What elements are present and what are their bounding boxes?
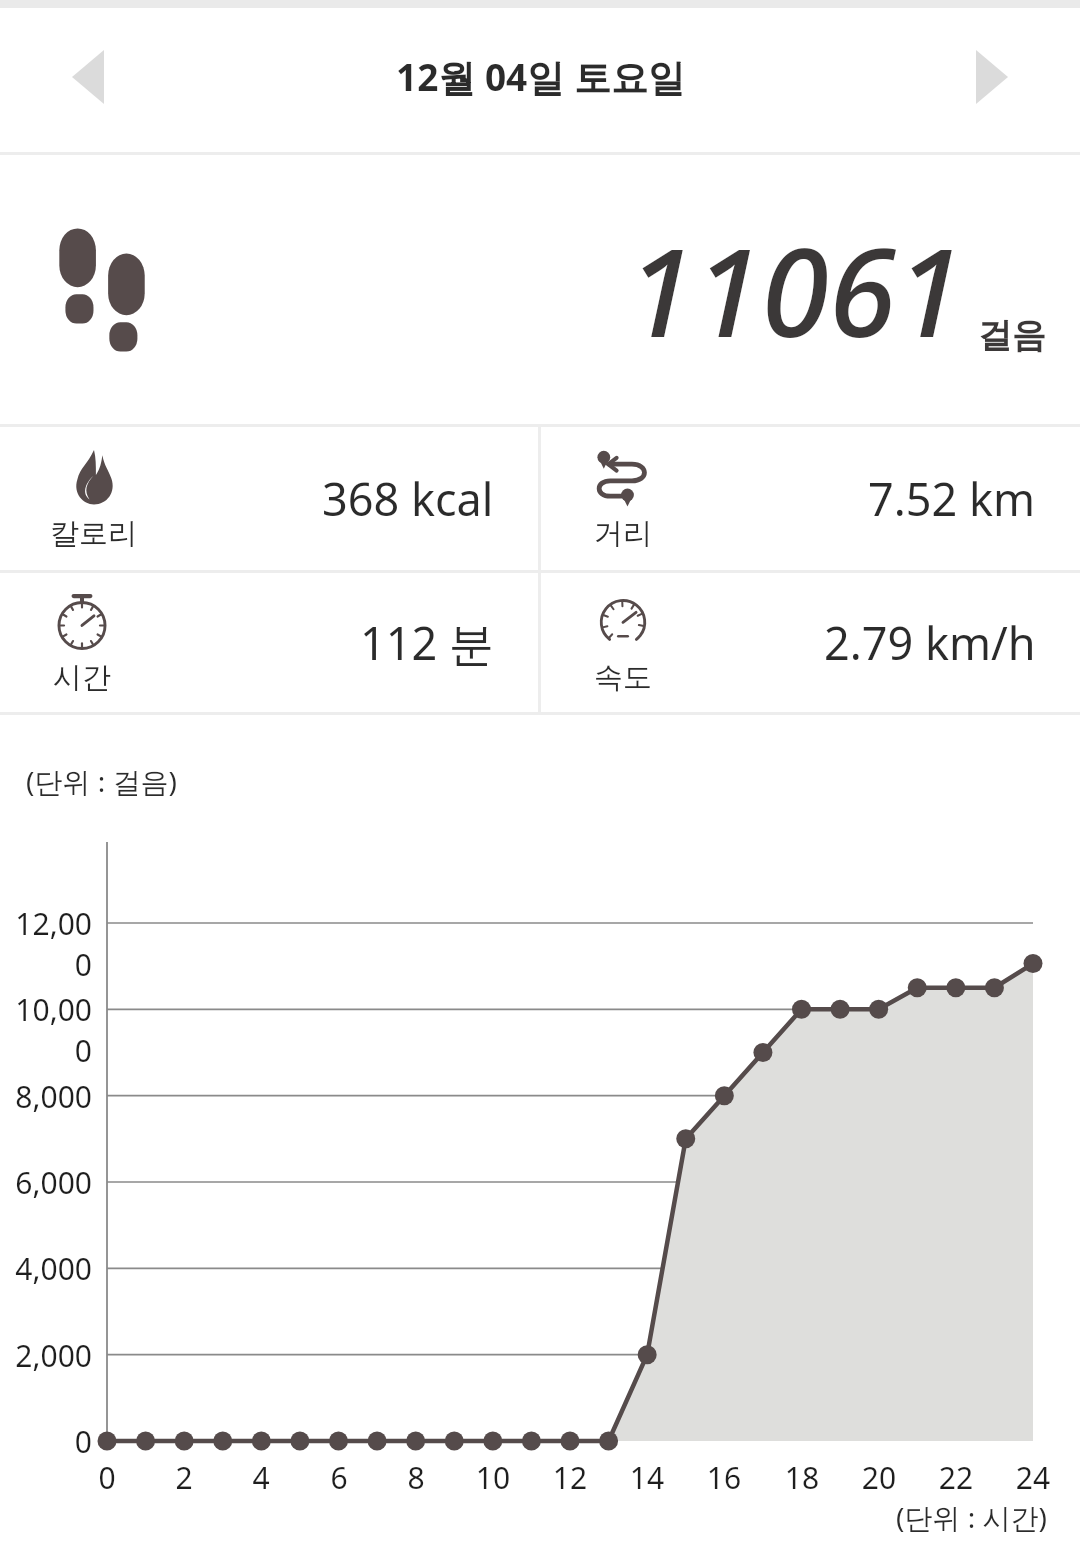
staticText: 20 bbox=[849, 1457, 909, 1498]
button[interactable]: 속도 bbox=[541, 573, 1080, 712]
staticText: 걸음 bbox=[978, 314, 1046, 357]
staticText: 12 bbox=[540, 1457, 600, 1498]
staticText: 거리 bbox=[594, 515, 652, 552]
staticText: 14 bbox=[617, 1457, 677, 1498]
staticText: 22 bbox=[926, 1457, 986, 1498]
staticText: 10,000 bbox=[0, 989, 92, 1071]
staticText: 4 bbox=[231, 1457, 291, 1498]
staticText: 2 bbox=[154, 1457, 214, 1498]
staticText: 6,000 bbox=[0, 1162, 92, 1203]
button[interactable]: 11061 bbox=[0, 155, 1080, 424]
staticText: (단위 : 시간) bbox=[896, 1498, 1047, 1536]
staticText: 0 bbox=[77, 1457, 137, 1498]
staticText: 칼로리 bbox=[50, 515, 137, 552]
staticText: 0 bbox=[0, 1421, 92, 1462]
staticText: 2.79 km/h bbox=[824, 612, 1036, 673]
staticText: 4,000 bbox=[0, 1248, 92, 1289]
button[interactable]: Previous day bbox=[42, 31, 134, 123]
button[interactable]: 칼로리 bbox=[0, 427, 538, 570]
staticText: 7.52 km bbox=[868, 468, 1036, 529]
staticText: 368 kcal bbox=[322, 468, 494, 529]
staticText: 10 bbox=[463, 1457, 523, 1498]
staticText: 시간 bbox=[53, 659, 111, 696]
staticText: 18 bbox=[772, 1457, 832, 1498]
staticText: 24 bbox=[1003, 1457, 1063, 1498]
button[interactable]: 거리 bbox=[541, 427, 1080, 570]
staticText: 8,000 bbox=[0, 1076, 92, 1117]
staticText: 12월 04일 토요일 bbox=[396, 51, 685, 102]
staticText: 8 bbox=[386, 1457, 446, 1498]
staticText: 12,000 bbox=[0, 903, 92, 985]
staticText: 16 bbox=[694, 1457, 754, 1498]
button[interactable]: Next day bbox=[946, 31, 1038, 123]
staticText: (단위 : 걸음) bbox=[26, 762, 177, 800]
button[interactable]: 시간 bbox=[0, 573, 538, 712]
staticText: 2,000 bbox=[0, 1335, 92, 1376]
staticText: 속도 bbox=[594, 659, 652, 696]
staticText: 6 bbox=[309, 1457, 369, 1498]
staticText: 11061 bbox=[627, 207, 964, 373]
staticText: 112 분 bbox=[360, 612, 494, 673]
